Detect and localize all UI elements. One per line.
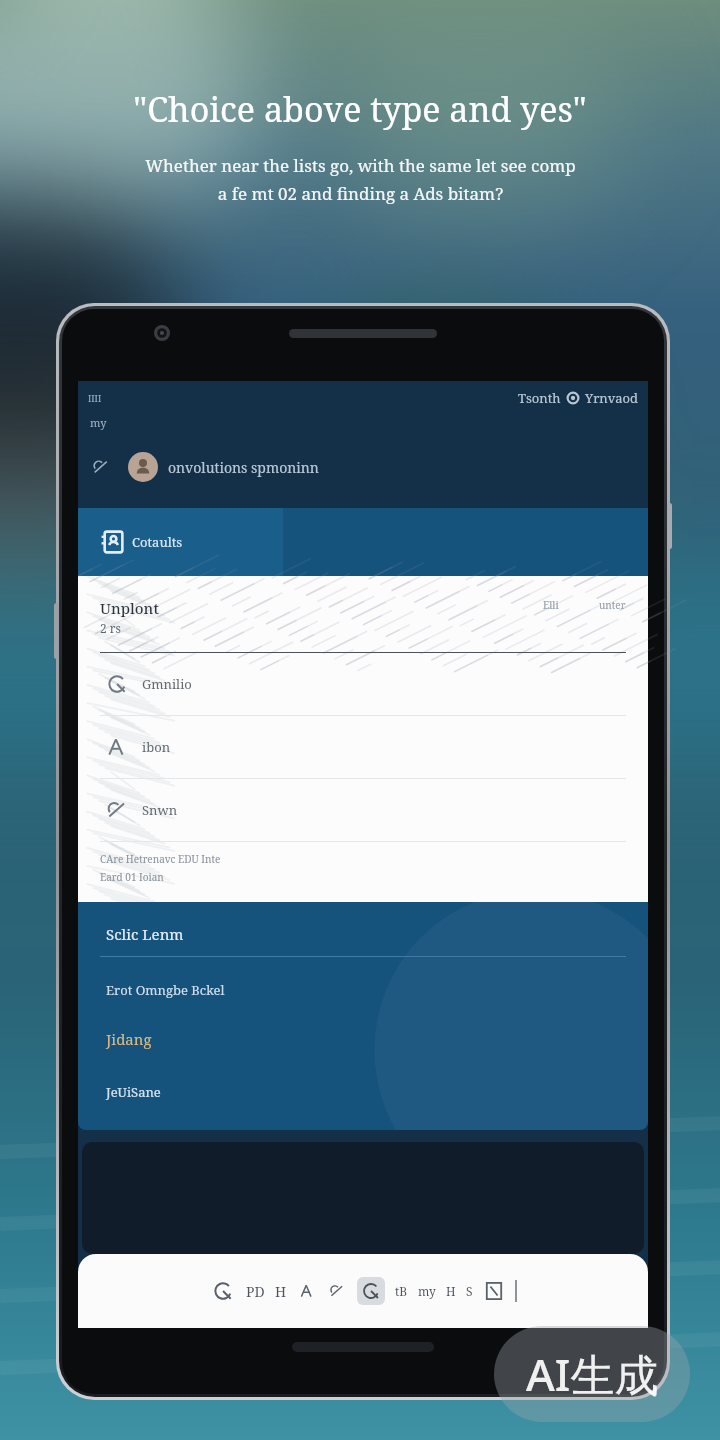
staticText: tB	[395, 1283, 408, 1299]
staticText: Gmnilio	[142, 675, 192, 693]
button[interactable]: ibon	[100, 716, 626, 778]
staticText: JeUiSane	[106, 1083, 161, 1101]
button[interactable]: Cut	[297, 1281, 317, 1301]
staticText: Cotaults	[132, 533, 183, 551]
staticText: S	[466, 1283, 473, 1299]
staticText: Yrnvaod	[585, 389, 638, 407]
staticText: Snwn	[142, 801, 178, 819]
button[interactable]: Apps	[357, 1277, 385, 1305]
staticText: Jidang	[106, 1029, 152, 1049]
staticText: my	[90, 415, 107, 430]
staticText: AI生成	[526, 1344, 659, 1404]
staticText: unter	[599, 598, 626, 612]
button[interactable]: Gmnilio	[100, 653, 626, 715]
staticText: PD	[246, 1282, 265, 1301]
button[interactable]: Compose	[210, 1278, 236, 1304]
staticText: Whether near the lists go, with the same…	[145, 154, 576, 205]
button[interactable]: More	[327, 1281, 347, 1301]
staticText: ibon	[142, 738, 171, 756]
staticText: onvolutions spmoninn	[168, 458, 319, 477]
staticText: H	[275, 1282, 287, 1301]
staticText: CAre Hetrenavc EDU Inte	[100, 852, 221, 866]
staticText: H	[446, 1283, 456, 1299]
staticText: Unplont	[100, 598, 159, 618]
staticText: Sclic Lenm	[106, 924, 184, 944]
button[interactable]: Send	[483, 1280, 505, 1302]
staticText: Erot Omngbe Bckel	[106, 981, 225, 999]
staticText: my	[418, 1283, 436, 1299]
button[interactable]: Erot Omngbe Bckel	[78, 977, 648, 1003]
button[interactable]: Cotaults	[78, 508, 648, 576]
button[interactable]: Snwn	[100, 779, 626, 841]
button[interactable]: JeUiSane	[78, 1079, 648, 1105]
staticText: Eard 01 Ioian	[100, 870, 164, 884]
button[interactable]: Sclic Lenm	[78, 920, 648, 948]
staticText: "Choice above type and yes"	[133, 86, 587, 132]
staticText: Elli	[543, 598, 559, 612]
button[interactable]: onvolutions spmoninn	[78, 446, 648, 488]
button[interactable]: Jidang	[78, 1025, 648, 1053]
staticText: IIII	[88, 392, 102, 404]
staticText: Tsonth	[518, 389, 561, 407]
staticText: 2 rs	[100, 620, 121, 636]
